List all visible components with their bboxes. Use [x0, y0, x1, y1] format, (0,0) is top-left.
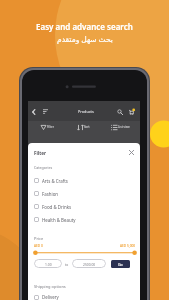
staticText: Fashion — [42, 191, 59, 197]
button[interactable]: Cart — [127, 107, 136, 116]
button[interactable]: Delivery — [34, 293, 136, 300]
staticText: Arts & Crafts — [42, 178, 68, 184]
staticText: 2500.00 — [83, 262, 96, 266]
button[interactable]: Arts & Crafts — [34, 174, 136, 187]
button[interactable]: Filter — [28, 121, 67, 133]
staticText: Go — [118, 262, 123, 267]
staticText: AED 0 — [34, 244, 43, 248]
button[interactable]: Close — [127, 148, 136, 157]
button[interactable]: Search — [115, 107, 124, 116]
staticText: Food & Drinks — [42, 204, 72, 210]
staticText: to — [65, 262, 69, 266]
staticText: Delivery — [42, 294, 59, 300]
button[interactable]: Fashion — [34, 187, 136, 200]
staticText: 1.00 — [45, 262, 52, 266]
button[interactable]: Go — [111, 260, 130, 268]
staticText: AED 5,000 — [120, 244, 136, 248]
staticText: Filter — [34, 150, 47, 156]
staticText: Easy and advance search — [36, 21, 133, 32]
button[interactable]: 2500.00 — [72, 259, 106, 268]
staticText: List view — [118, 125, 130, 129]
button[interactable]: Food & Drinks — [34, 200, 136, 213]
button[interactable]: Sort — [67, 121, 101, 133]
staticText: Shipping options — [34, 284, 66, 289]
staticText: Filter — [47, 125, 54, 129]
button[interactable]: Menu — [41, 107, 49, 115]
staticText: Products — [78, 109, 94, 114]
button[interactable]: Back — [28, 107, 37, 116]
staticText: Price — [34, 236, 44, 241]
staticText: Health & Beauty — [42, 217, 76, 223]
button[interactable]: Health & Beauty — [34, 213, 136, 226]
staticText: Sort — [84, 125, 90, 129]
button[interactable]: List view — [101, 121, 140, 133]
button[interactable]: 1.00 — [34, 259, 62, 268]
staticText: Categories — [34, 165, 53, 170]
staticText: بحث سهل ومتقدم — [57, 34, 113, 44]
